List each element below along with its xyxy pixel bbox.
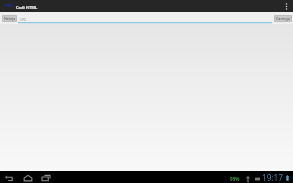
button[interactable]: Home — [19, 171, 36, 183]
staticText: Codi HTML — [16, 5, 38, 10]
button[interactable]: Neteja — [2, 15, 17, 22]
button[interactable]: Recent apps — [37, 171, 54, 183]
staticText: Neteja — [4, 16, 16, 21]
button[interactable]: Carrega — [274, 15, 292, 22]
staticText: HTML — [4, 4, 13, 8]
staticText: Carrega — [276, 16, 290, 21]
staticText: URL — [20, 17, 27, 22]
staticText: 95% — [230, 176, 240, 182]
button[interactable]: URL — [18, 12, 272, 24]
staticText: 19:17 — [262, 172, 283, 183]
button[interactable]: More options — [279, 0, 293, 12]
button[interactable]: Back — [0, 171, 17, 183]
